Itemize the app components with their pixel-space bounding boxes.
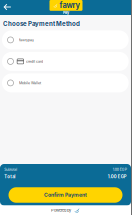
- staticText: Confirm Payment: [44, 192, 87, 198]
- button[interactable]: Confirm Payment: [8, 187, 122, 203]
- staticText: Subtotal: [4, 167, 17, 171]
- staticText: Mobile Wallet: [19, 81, 41, 85]
- staticText: Pay: [63, 10, 69, 15]
- button[interactable]: credit card: [2, 52, 129, 71]
- staticText: Total: [4, 174, 15, 179]
- button[interactable]: fawrypay: [2, 30, 129, 49]
- button[interactable]: Back: [0, 0, 15, 14]
- staticText: 1.00 EGP: [108, 174, 127, 179]
- staticText: fawrypay: [19, 38, 34, 42]
- staticText: 1.00 EGP: [113, 167, 127, 171]
- button[interactable]: Mobile Wallet: [2, 73, 129, 92]
- staticText: Choose Payment Method: [3, 20, 80, 27]
- staticText: credit card: [26, 59, 43, 64]
- staticText: fawry: [59, 1, 79, 10]
- staticText: Powered by: [51, 208, 71, 213]
